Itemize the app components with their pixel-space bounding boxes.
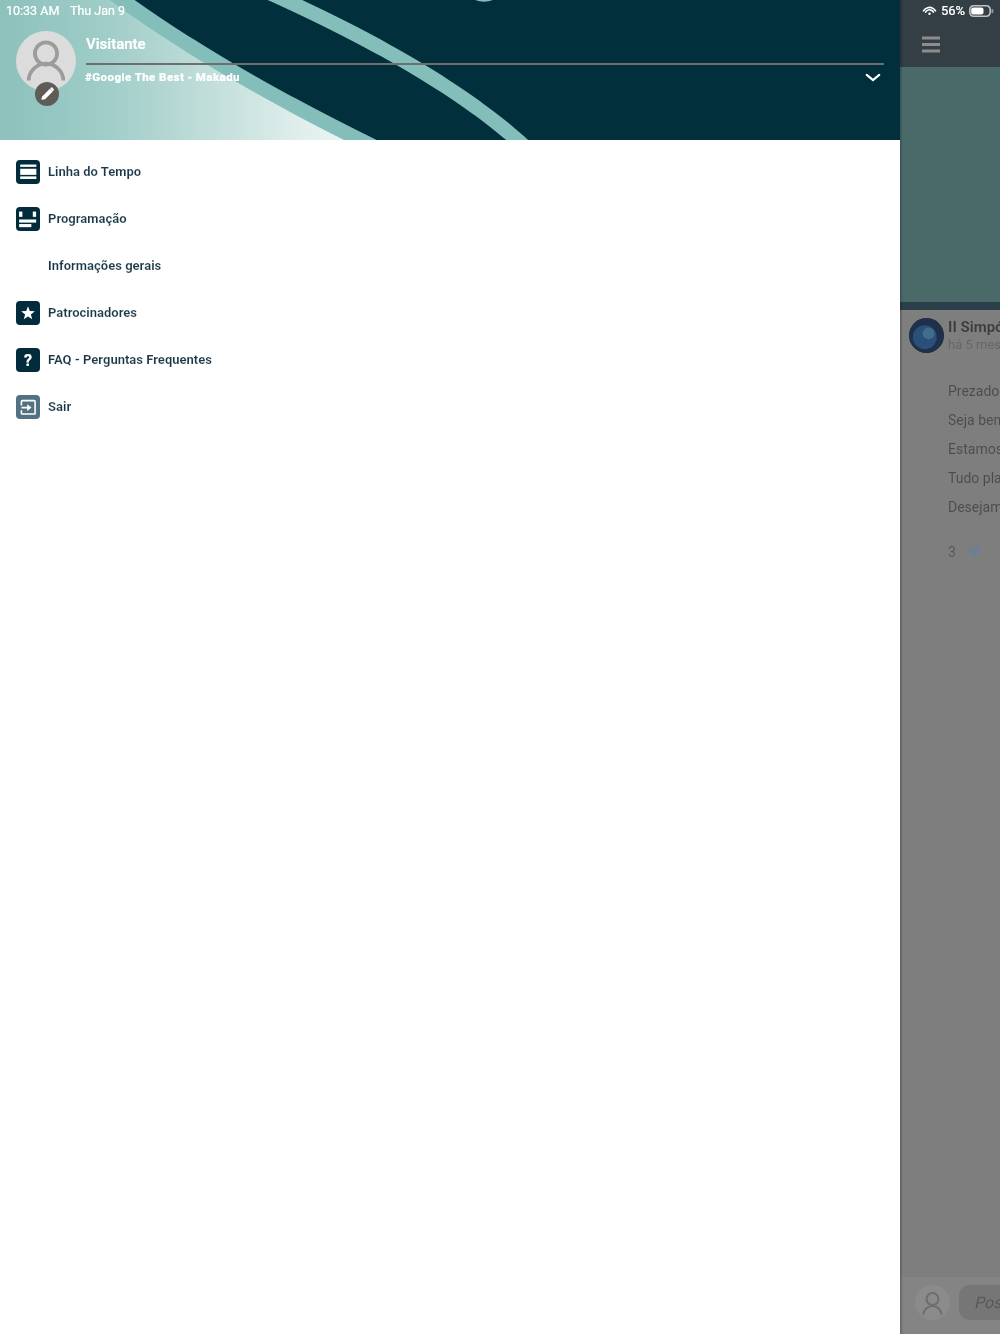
staticText: Seja bem [948,412,1000,428]
staticText: ? [24,351,32,370]
staticText: Linha do Tempo [48,164,142,179]
staticText: Pos [974,1293,1000,1312]
staticText: há 5 mese [948,337,1000,352]
button[interactable]: Pos [959,1285,1000,1320]
staticText: Prezado [948,383,1000,399]
staticText: Thu Jan 9 [70,3,126,18]
staticText: Programação [48,211,127,226]
staticText: Estamos [948,441,1000,457]
staticText: 56% [941,3,966,18]
staticText: #Google The Best - Makadu [85,70,240,83]
button[interactable]: Informações gerais [0,242,900,289]
staticText: FAQ - Perguntas Frequentes [48,352,212,367]
staticText: Informações gerais [48,258,162,273]
button[interactable]: Patrocinadores [0,289,900,336]
staticText: Desejamo [948,499,1000,515]
staticText: Tudo plan [948,470,1000,486]
button[interactable]: Open navigation menu [917,32,945,60]
button[interactable]: Your profile [915,1285,950,1320]
staticText: Sair [48,399,72,414]
button[interactable]: Programação [0,195,900,242]
button[interactable]: ? [0,336,900,383]
staticText: Patrocinadores [48,305,138,320]
staticText: 3 [948,544,956,560]
button[interactable]: Profile photo [16,31,76,91]
staticText: II Simpó [948,318,1000,336]
button[interactable]: Linha do Tempo [0,148,900,195]
staticText: Visitante [86,35,146,53]
staticText: 10:33 AM [6,3,60,18]
button[interactable]: Edit profile [35,82,59,106]
button[interactable]: Sair [0,383,900,430]
button[interactable]: Expand account list [860,64,886,90]
